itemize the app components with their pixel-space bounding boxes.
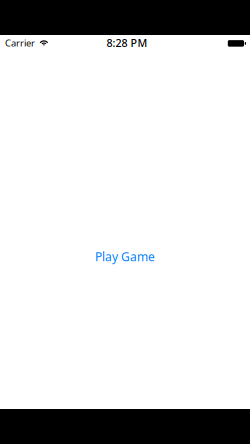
staticText: 8:28 PM [106, 36, 147, 50]
staticText: Play Game [95, 249, 155, 264]
staticText: Carrier [5, 37, 35, 49]
button[interactable]: Play Game [89, 245, 161, 268]
